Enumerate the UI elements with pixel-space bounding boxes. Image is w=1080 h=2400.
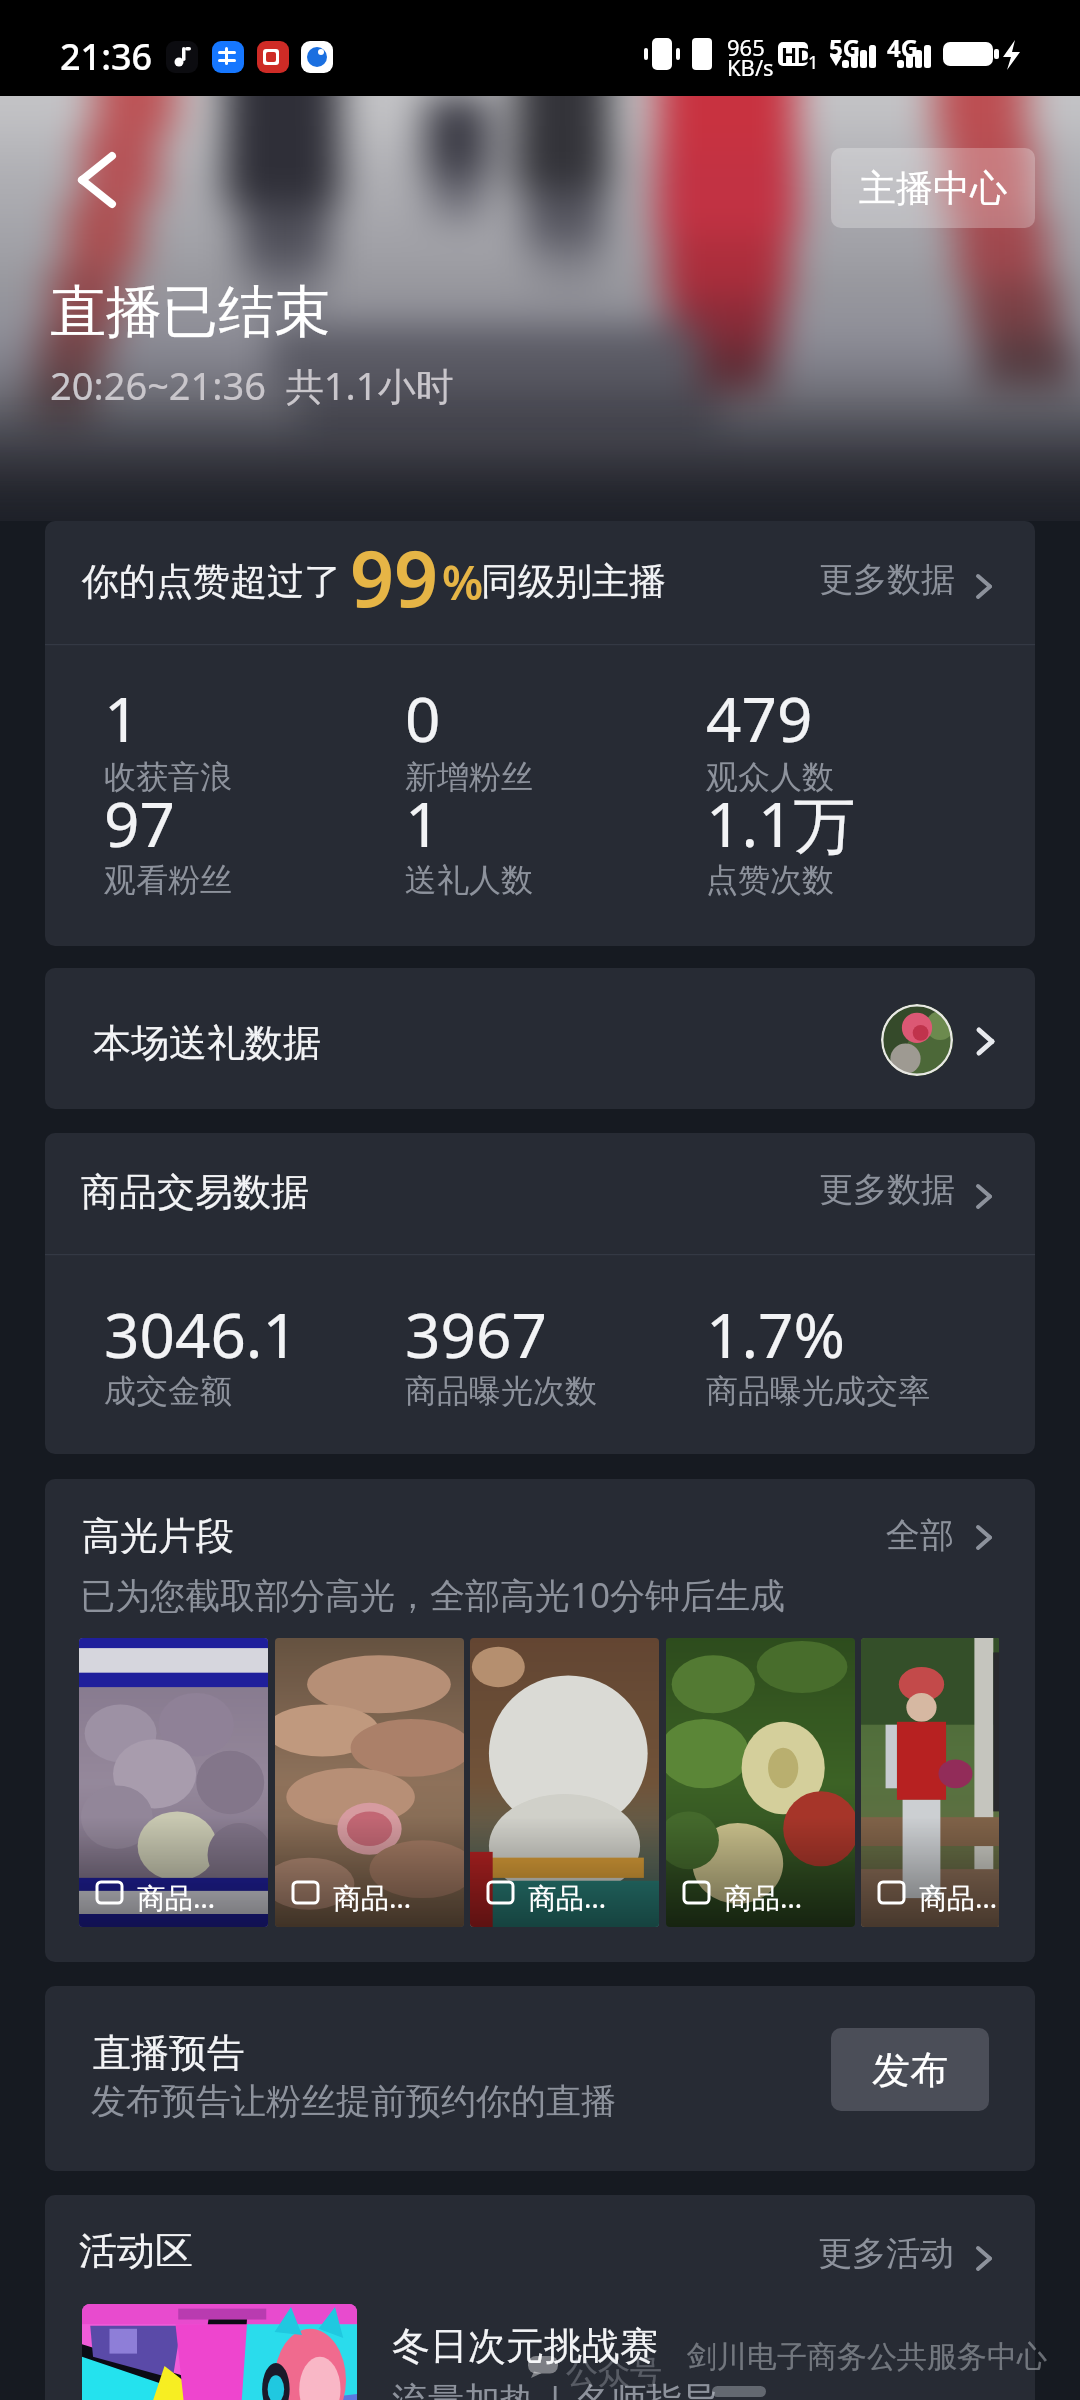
button[interactable]: Activity banner xyxy=(82,2304,357,2400)
staticText: 你的点赞超过了 xyxy=(82,558,341,605)
staticText: 剑川电子商务公共服务中心 xyxy=(687,2338,1047,2376)
staticText: 商品曝光次数 xyxy=(405,1371,597,1411)
staticText: KB/s xyxy=(727,52,774,82)
staticText: 更多活动 xyxy=(818,2232,954,2275)
staticText: 商品… xyxy=(333,1878,412,1916)
staticText: 更多数据 xyxy=(819,1168,955,1211)
button[interactable]: Highlight clip xyxy=(275,1638,464,1927)
staticText: 点赞次数 xyxy=(706,860,834,900)
staticText: 高光片段 xyxy=(82,1512,234,1560)
staticText: 商品… xyxy=(919,1878,998,1916)
staticText: 3967 xyxy=(405,1292,547,1376)
staticText: 全部 xyxy=(886,1514,954,1557)
staticText: 商品交易数据 xyxy=(81,1168,309,1216)
staticText: 965 xyxy=(727,32,765,62)
staticText: 冬日次元挑战赛 xyxy=(392,2322,658,2370)
staticText: 99 xyxy=(350,525,439,630)
button[interactable] xyxy=(805,535,1005,615)
staticText: 已为您截取部分高光，全部高光10分钟后生成 xyxy=(80,1571,786,1619)
staticText: 1 xyxy=(405,781,441,865)
staticText: 商品… xyxy=(528,1878,607,1916)
button[interactable]: Highlight clip xyxy=(861,1638,999,1927)
staticText: 直播预告 xyxy=(93,2029,245,2077)
staticText: 1.1万 xyxy=(706,781,856,866)
staticText: 4G xyxy=(887,31,919,64)
staticText: 本场送礼数据 xyxy=(93,1019,321,1067)
staticText: 直播已结束 xyxy=(50,277,330,348)
staticText: % xyxy=(442,550,484,614)
staticText: 活动区 xyxy=(79,2227,193,2275)
staticText: 观众人数 xyxy=(706,757,834,797)
staticText: 3046.1 xyxy=(104,1292,298,1376)
button[interactable]: Highlight clip xyxy=(666,1638,855,1927)
staticText: 新增粉丝 xyxy=(405,757,533,797)
button[interactable]: Highlight clip xyxy=(79,1638,268,1927)
staticText: 商品… xyxy=(724,1878,803,1916)
staticText: 5G xyxy=(829,31,861,64)
staticText: HD xyxy=(781,41,813,70)
staticText: 发布 xyxy=(872,2046,948,2094)
staticText: 更多数据 xyxy=(819,558,955,601)
staticText: 1.7% xyxy=(706,1292,846,1376)
button[interactable]: Back xyxy=(57,131,137,211)
staticText: 公众号 xyxy=(566,2352,662,2392)
staticText: 观看粉丝 xyxy=(104,860,232,900)
staticText: 1 xyxy=(808,50,819,75)
staticText: 收获音浪 xyxy=(104,757,232,797)
button[interactable]: 主播中心 xyxy=(831,148,1035,228)
button[interactable]: Highlight clip xyxy=(470,1638,659,1927)
staticText: 主播中心 xyxy=(859,165,1007,212)
staticText: 21:36 xyxy=(60,32,153,81)
button[interactable] xyxy=(805,2209,1005,2289)
staticText: 商品… xyxy=(137,1878,216,1916)
staticText: 流量加热 | 名师指导 xyxy=(392,2375,719,2400)
staticText: 479 xyxy=(706,676,813,760)
staticText: 发布预告让粉丝提前预约你的直播 xyxy=(91,2079,616,2123)
staticText: 同级别主播 xyxy=(481,558,666,605)
staticText: 0 xyxy=(405,676,441,760)
staticText: 1 xyxy=(104,676,140,760)
button[interactable] xyxy=(45,968,1035,1109)
staticText: 成交金额 xyxy=(104,1371,232,1411)
staticText: 20:26~21:36 共1.1小时 xyxy=(50,359,454,411)
staticText: 商品曝光成交率 xyxy=(706,1371,930,1411)
staticText: 送礼人数 xyxy=(405,860,533,900)
button[interactable]: 发布 xyxy=(831,2028,989,2111)
staticText: 97 xyxy=(104,781,175,865)
button[interactable] xyxy=(865,1491,1005,1571)
button[interactable] xyxy=(805,1147,1005,1227)
